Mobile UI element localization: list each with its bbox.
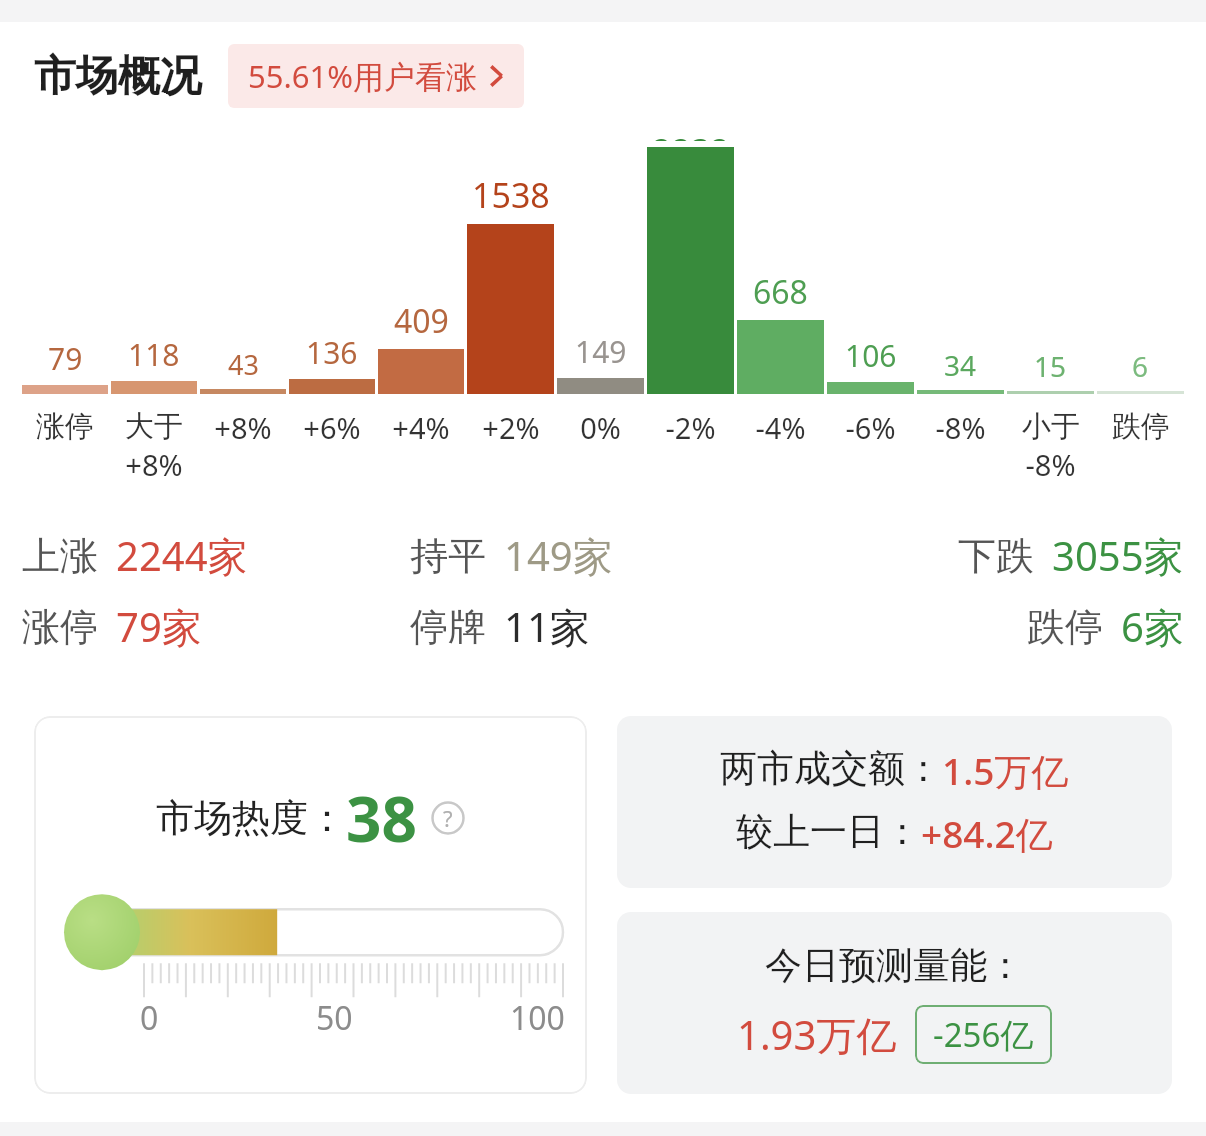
- staticText: +4%: [392, 408, 450, 447]
- staticText: 跌停: [1027, 603, 1103, 651]
- staticText: +6%: [303, 408, 361, 447]
- staticText: 6: [1132, 347, 1149, 385]
- staticText: -8%: [935, 408, 986, 447]
- staticText: 下跌: [958, 532, 1034, 580]
- staticText: 涨停: [36, 408, 94, 445]
- staticText: 市场概况: [34, 50, 202, 103]
- button[interactable]: 今日预测量能：: [617, 912, 1172, 1094]
- button[interactable]: 市场热度：: [34, 716, 587, 1094]
- staticText: 79家: [116, 599, 202, 654]
- staticText: 1.93万亿: [737, 1007, 897, 1062]
- staticText: 1538: [472, 172, 550, 218]
- button[interactable]: 118: [111, 128, 197, 484]
- staticText: 上涨: [22, 532, 98, 580]
- staticText: 3055家: [1052, 528, 1184, 583]
- staticText: 38: [346, 776, 417, 860]
- staticText: -6%: [845, 408, 896, 447]
- staticText: +84.2亿: [921, 808, 1053, 859]
- button[interactable]: 两市成交额：: [617, 716, 1172, 888]
- staticText: 149: [575, 331, 627, 372]
- button[interactable]: 106: [827, 128, 914, 447]
- staticText: 1.5万亿: [942, 745, 1069, 796]
- staticText: -8%: [1025, 445, 1076, 484]
- staticText: 大于: [125, 408, 183, 445]
- staticText: 市场热度：: [156, 794, 346, 842]
- staticText: 106: [845, 335, 897, 376]
- staticText: 小于: [1022, 408, 1080, 445]
- staticText: +8%: [125, 445, 183, 484]
- staticText: +8%: [214, 408, 272, 447]
- staticText: 34: [944, 346, 977, 384]
- staticText: 11家: [504, 599, 590, 654]
- button[interactable]: 1538: [467, 128, 554, 447]
- staticText: 0%: [580, 408, 621, 447]
- button[interactable]: 149: [557, 128, 644, 447]
- button[interactable]: 409: [378, 128, 464, 447]
- staticText: -4%: [755, 408, 806, 447]
- staticText: 6家: [1121, 599, 1184, 654]
- staticText: 79: [48, 338, 83, 379]
- staticText: 55.61%用户看涨: [248, 55, 477, 97]
- staticText: 跌停: [1112, 408, 1170, 445]
- button[interactable]: 34: [917, 128, 1004, 447]
- staticText: 409: [394, 299, 449, 343]
- button[interactable]: 6: [1097, 128, 1184, 445]
- button[interactable]: 43: [200, 128, 286, 447]
- button[interactable]: 2232: [647, 128, 734, 447]
- button[interactable]: 55.61%用户看涨: [228, 44, 524, 108]
- staticText: -256亿: [933, 1012, 1034, 1057]
- staticText: 两市成交额：: [720, 745, 942, 792]
- staticText: 668: [753, 270, 808, 314]
- staticText: 136: [306, 332, 358, 373]
- button[interactable]: 136: [289, 128, 375, 447]
- staticText: 0: [140, 996, 159, 1040]
- staticText: 43: [228, 346, 259, 383]
- staticText: 停牌: [410, 603, 486, 651]
- button[interactable]: 79: [22, 128, 108, 445]
- staticText: +2%: [482, 408, 540, 447]
- staticText: 100: [510, 996, 565, 1040]
- staticText: 149家: [504, 528, 613, 583]
- button[interactable]: 15: [1007, 128, 1094, 484]
- staticText: 今日预测量能：: [765, 942, 1024, 989]
- staticText: 50: [316, 996, 353, 1040]
- staticText: ?: [443, 803, 453, 833]
- staticText: 2232: [652, 128, 730, 141]
- staticText: 持平: [410, 532, 486, 580]
- button[interactable]: 668: [737, 128, 824, 447]
- button[interactable]: 帮助: [431, 801, 465, 835]
- staticText: -2%: [665, 408, 716, 447]
- staticText: 2244家: [116, 528, 248, 583]
- staticText: 较上一日：: [736, 808, 921, 855]
- staticText: 118: [128, 334, 180, 375]
- staticText: 15: [1034, 347, 1067, 385]
- staticText: 涨停: [22, 603, 98, 651]
